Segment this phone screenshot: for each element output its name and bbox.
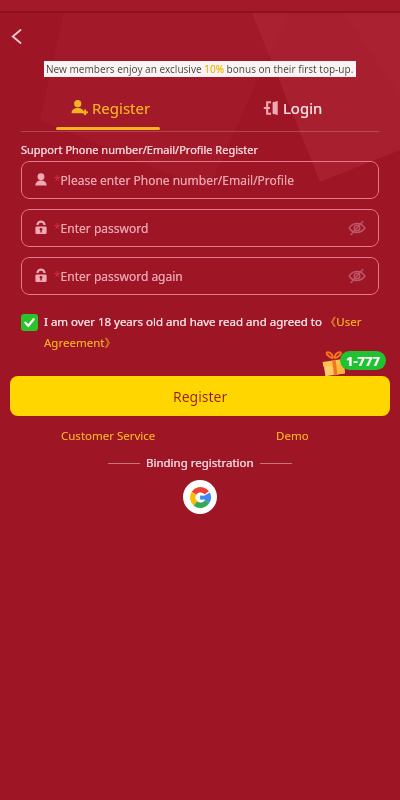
button[interactable]: Sign in with Google: [183, 480, 217, 514]
staticText: New members enjoy an exclusive 10% bonus…: [46, 62, 354, 76]
staticText: *Please enter Phone number/Email/Profile: [54, 172, 294, 188]
staticText: *Enter password: [54, 220, 149, 236]
button[interactable]: Back: [0, 13, 40, 57]
staticText: Demo: [276, 428, 309, 444]
button[interactable]: Register: [10, 376, 390, 416]
button[interactable]: Gift bonus: [321, 351, 393, 377]
staticText: I am over 18 years old and have read and…: [44, 314, 386, 350]
button[interactable]: *Enter password: [21, 209, 379, 247]
button[interactable]: I am over 18 years old and have read and…: [21, 314, 386, 350]
button[interactable]: *Please enter Phone number/Email/Profile: [21, 161, 379, 199]
button[interactable]: Demo: [192, 428, 392, 444]
staticText: Register: [173, 387, 228, 406]
staticText: Support Phone number/Email/Profile Regis…: [21, 142, 258, 157]
button[interactable]: Login: [200, 88, 400, 131]
staticText: Customer Service: [61, 428, 156, 444]
button[interactable]: Toggle password visibility: [345, 216, 369, 240]
button[interactable]: *Enter password again: [21, 257, 379, 295]
button[interactable]: Toggle password visibility: [345, 264, 369, 288]
button[interactable]: Customer Service: [8, 428, 208, 444]
button[interactable]: Register: [0, 88, 200, 131]
staticText: 1-777: [346, 352, 380, 370]
staticText: Login: [283, 98, 323, 118]
staticText: *Enter password again: [54, 268, 183, 284]
staticText: Binding registration: [140, 455, 260, 471]
button[interactable]: New members enjoy an exclusive 10% bonus…: [46, 61, 354, 77]
staticText: Register: [92, 98, 151, 118]
